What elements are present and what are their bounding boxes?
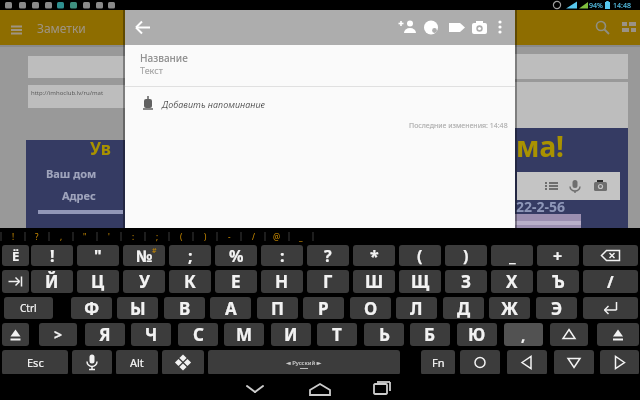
staticText: ( (417, 245, 423, 266)
staticText: ? (324, 245, 332, 266)
staticText: Л (410, 297, 423, 319)
staticText: # (152, 246, 157, 256)
staticText: Ч (145, 323, 158, 346)
staticText: 14:48 (613, 1, 631, 11)
staticText: И (284, 323, 298, 346)
staticText: Адрес (62, 188, 96, 203)
staticText: : (132, 231, 135, 242)
staticText: ) (463, 245, 469, 266)
staticText: % (229, 245, 244, 266)
staticText: ! (12, 231, 15, 242)
staticText: , (60, 231, 63, 242)
staticText: К (184, 270, 196, 293)
staticText: Ctrl (20, 301, 37, 315)
staticText: Ю (468, 323, 486, 346)
staticText: " (83, 231, 87, 242)
staticText: * (370, 245, 379, 266)
staticText: ( (180, 231, 183, 242)
staticText: Т (332, 323, 342, 346)
staticText: Щ (411, 270, 430, 293)
staticText: № (136, 245, 153, 266)
staticText: Н (275, 270, 289, 293)
staticText: Р (318, 297, 329, 319)
staticText: Э (551, 297, 563, 319)
staticText: Е (231, 270, 241, 293)
staticText: Ы (130, 297, 146, 319)
staticText: Ш (365, 270, 384, 293)
staticText: Заметки (37, 20, 86, 36)
staticText: Ф (84, 297, 100, 319)
staticText: _ (509, 245, 516, 266)
staticText: ◄ Русский ► (286, 359, 322, 367)
staticText: Alt (130, 355, 144, 370)
staticText: Ж (501, 297, 518, 319)
staticText: ! (50, 245, 55, 266)
staticText: ; (156, 231, 159, 242)
staticText: Ц (91, 270, 105, 293)
staticText: Название (140, 51, 188, 65)
staticText: Fn (432, 355, 445, 370)
staticText: ; (188, 245, 193, 266)
staticText: http://imhoclub.lv/ru/mat (31, 89, 104, 97)
staticText: Последние изменения: 14:48 (409, 121, 508, 131)
staticText: Ваш дом (46, 166, 97, 181)
staticText: Ё (12, 247, 20, 265)
staticText: В (179, 297, 191, 319)
staticText: Ув (90, 137, 111, 160)
staticText: Й (45, 270, 59, 293)
staticText: Ъ (552, 270, 565, 293)
staticText: Я (99, 323, 111, 346)
staticText: @ (273, 231, 281, 242)
staticText: С (193, 323, 204, 346)
staticText: ' (108, 231, 110, 242)
staticText: " (94, 245, 102, 266)
staticText: Ь (379, 323, 390, 346)
staticText: З (461, 270, 472, 293)
staticText: ма! (516, 127, 565, 165)
staticText: / (607, 271, 614, 293)
staticText: Добавить напоминание (162, 98, 265, 110)
staticText: : (280, 245, 285, 266)
staticText: Б (424, 323, 436, 346)
staticText: О (364, 297, 378, 319)
staticText: ) (204, 231, 207, 242)
staticText: А (225, 297, 237, 319)
staticText: _ (299, 231, 303, 242)
staticText: М (236, 323, 253, 346)
staticText: 22-2-56 (516, 197, 565, 216)
staticText: П (271, 297, 284, 319)
staticText: - (228, 231, 231, 242)
staticText: 94% (589, 1, 603, 11)
staticText: / (252, 231, 255, 242)
staticText: ? (35, 231, 39, 242)
staticText: Esc (27, 355, 44, 370)
staticText: У (139, 270, 150, 293)
staticText: Д (457, 297, 471, 319)
staticText: , (521, 325, 526, 345)
staticText: + (553, 245, 563, 266)
staticText: > (54, 325, 63, 344)
staticText: Х (506, 270, 518, 293)
staticText: Г (323, 270, 333, 293)
staticText: Текст (140, 64, 163, 76)
